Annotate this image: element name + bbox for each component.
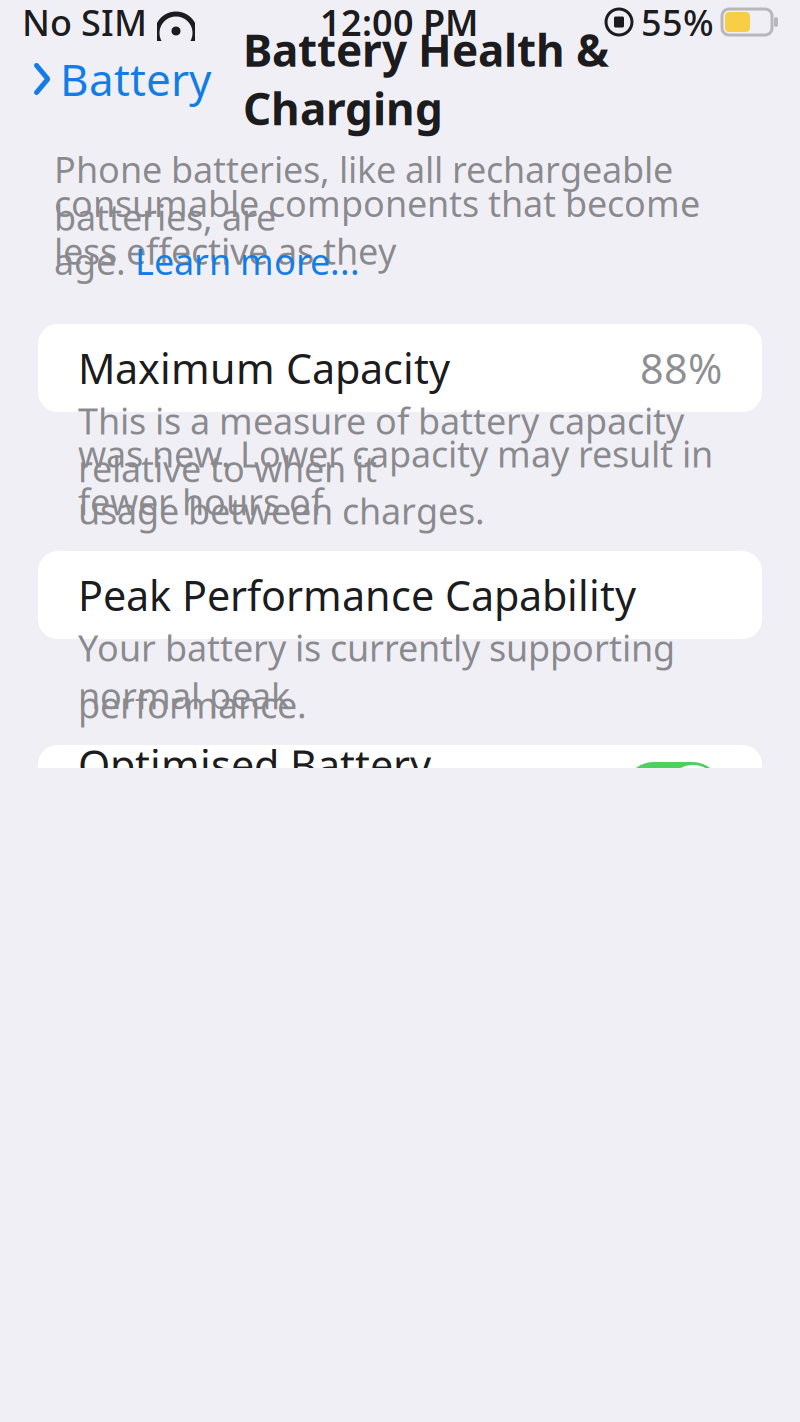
button[interactable]: Battery <box>14 42 229 116</box>
staticText: 55% <box>641 0 714 46</box>
staticText: Your battery is currently supporting nor… <box>78 624 675 719</box>
staticText: Peak Performance Capability <box>78 568 636 622</box>
staticText: usage between charges. <box>78 487 485 534</box>
staticText: performance. <box>78 681 307 728</box>
staticText: 12:00 PM <box>320 0 478 46</box>
staticText: Battery Health & Charging <box>243 21 609 137</box>
staticText: Maximum Capacity <box>78 341 450 395</box>
button[interactable]: Optimised Battery Charging <box>38 745 762 839</box>
staticText: was new. Lower capacity may result in fe… <box>78 430 713 525</box>
staticText: consumable components that become less e… <box>54 179 700 275</box>
button[interactable]: Learn more... <box>135 237 360 285</box>
staticText: No SIM <box>22 0 147 46</box>
staticText: Optimised Battery Charging <box>78 737 431 847</box>
staticText: 88% <box>640 341 722 395</box>
button[interactable]: Peak Performance Capability <box>38 551 762 639</box>
button[interactable]: Maximum Capacity <box>38 324 762 412</box>
staticText: age. <box>54 237 135 285</box>
staticText: Learn more... <box>135 237 360 285</box>
staticText: Battery <box>60 50 211 108</box>
staticText: Phone batteries, like all rechargeable b… <box>54 145 673 241</box>
staticText: This is a measure of battery capacity re… <box>78 397 684 492</box>
